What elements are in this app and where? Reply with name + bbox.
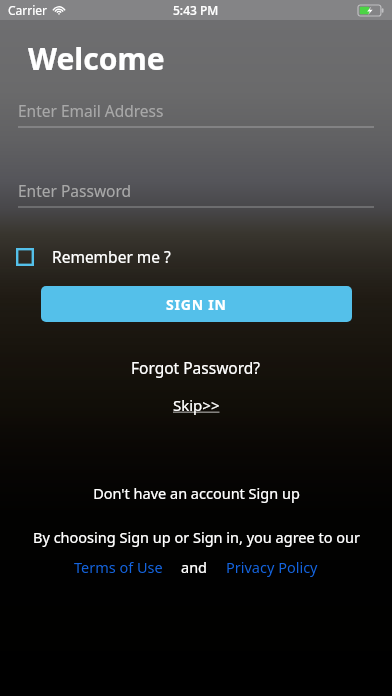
staticText: Skip>>	[173, 395, 220, 415]
staticText: Welcome	[28, 38, 165, 79]
button[interactable]: Privacy Policy	[222, 555, 322, 579]
button[interactable]: SIGN IN	[41, 286, 352, 322]
staticText: By choosing Sign up or Sign in, you agre…	[33, 527, 360, 547]
button[interactable]: Skip>>	[169, 391, 224, 419]
button[interactable]: Don't have an account Sign up	[87, 481, 306, 505]
staticText: Terms of Use	[74, 557, 163, 577]
staticText: Enter Password	[18, 180, 132, 201]
button[interactable]: Remember me ?	[14, 240, 173, 273]
button[interactable]: Enter Email Address	[18, 100, 374, 128]
staticText: SIGN IN	[166, 295, 227, 314]
staticText: and	[181, 557, 208, 577]
staticText: Remember me ?	[52, 246, 171, 267]
button[interactable]: Terms of Use	[70, 555, 167, 579]
staticText: Carrier	[8, 2, 48, 18]
staticText: Forgot Password?	[131, 357, 261, 378]
button[interactable]: Forgot Password?	[127, 353, 265, 382]
staticText: Enter Email Address	[18, 100, 164, 121]
button[interactable]: Enter Password	[18, 180, 374, 208]
staticText: 5:43 PM	[173, 2, 219, 18]
staticText: Privacy Policy	[226, 557, 318, 577]
staticText: Don't have an account Sign up	[93, 483, 300, 503]
